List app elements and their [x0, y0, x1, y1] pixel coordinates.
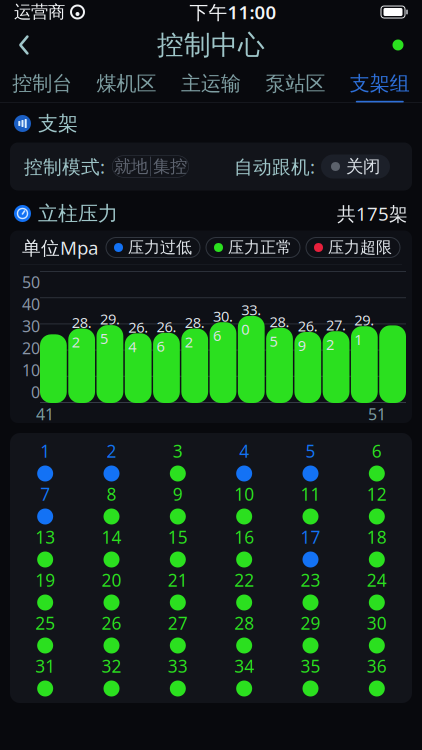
staticText: 30.6 [213, 306, 233, 345]
staticText: 50 [22, 271, 40, 293]
staticText: 煤机区 [97, 71, 157, 96]
button[interactable]: 15 [145, 525, 211, 568]
staticText: 关闭 [346, 156, 380, 177]
staticText: 集控 [153, 156, 187, 177]
button[interactable]: 5 [277, 439, 344, 482]
staticText: 34 [234, 654, 254, 677]
button[interactable]: 13 [12, 525, 78, 568]
staticText: 28 [234, 611, 254, 634]
button[interactable]: 2 [78, 439, 145, 482]
staticText: 29 [300, 611, 320, 634]
button[interactable]: 32 [78, 654, 145, 697]
staticText: 压力过低 [128, 238, 192, 257]
button[interactable]: 31 [12, 654, 78, 697]
staticText: 11 [300, 482, 320, 505]
staticText: 33.0 [241, 300, 261, 339]
button[interactable]: 24 [344, 568, 410, 611]
staticText: 13 [35, 525, 55, 548]
button[interactable]: 29 [277, 611, 344, 654]
staticText: 28.5 [269, 312, 289, 351]
staticText: 26.6 [156, 317, 176, 356]
staticText: 15 [168, 525, 188, 548]
staticText: 17 [300, 525, 320, 548]
button[interactable]: 20 [78, 568, 145, 611]
button[interactable]: 1 [12, 439, 78, 482]
button[interactable]: 25 [12, 611, 78, 654]
staticText: 立柱压力 [38, 201, 118, 226]
button[interactable]: 10 [211, 482, 277, 525]
staticText: 20 [22, 337, 40, 359]
staticText: 控制中心 [157, 29, 265, 61]
button[interactable]: 连接状态 [376, 25, 420, 65]
staticText: 泵站区 [265, 71, 325, 96]
staticText: 24 [367, 568, 387, 591]
button[interactable]: 11 [277, 482, 344, 525]
button[interactable]: 33 [145, 654, 211, 697]
staticText: 1 [40, 439, 50, 462]
staticText: 26.4 [128, 317, 148, 356]
button[interactable]: 泵站区 [253, 63, 338, 105]
button[interactable]: 16 [211, 525, 277, 568]
staticText: 4 [239, 439, 249, 462]
button[interactable]: 4 [211, 439, 277, 482]
button[interactable]: 27 [145, 611, 211, 654]
staticText: 29.1 [354, 310, 374, 349]
staticText: 30 [367, 611, 387, 634]
staticText: 就地 [114, 156, 148, 177]
staticText: 2 [106, 439, 116, 462]
staticText: 6 [372, 439, 382, 462]
staticText: 32 [101, 654, 121, 677]
staticText: 主运输 [181, 71, 241, 96]
staticText: 26 [101, 611, 121, 634]
staticText: 18 [367, 525, 387, 548]
button[interactable]: 集控 [151, 155, 189, 177]
button[interactable]: 21 [145, 568, 211, 611]
staticText: 33 [168, 654, 188, 677]
button[interactable]: 6 [344, 439, 410, 482]
button[interactable]: 26 [78, 611, 145, 654]
button[interactable]: 控制台 [0, 63, 84, 105]
staticText: 28.2 [185, 313, 205, 352]
button[interactable]: 9 [145, 482, 211, 525]
button[interactable]: 返回 [2, 25, 46, 65]
staticText: 35 [300, 654, 320, 677]
button[interactable]: 12 [344, 482, 410, 525]
staticText: 28.2 [72, 313, 92, 352]
staticText: 30 [22, 315, 40, 337]
button[interactable]: 支架组 [338, 63, 422, 105]
button[interactable]: 7 [12, 482, 78, 525]
button[interactable]: 36 [344, 654, 410, 697]
button[interactable]: 关闭 [321, 154, 390, 178]
button[interactable]: 28 [211, 611, 277, 654]
button[interactable]: 3 [145, 439, 211, 482]
staticText: 19 [35, 568, 55, 591]
staticText: 下午11:00 [189, 0, 276, 24]
staticText: 21 [168, 568, 188, 591]
button[interactable]: 35 [277, 654, 344, 697]
button[interactable]: 19 [12, 568, 78, 611]
staticText: 12 [367, 482, 387, 505]
button[interactable]: 17 [277, 525, 344, 568]
staticText: 10 [234, 482, 254, 505]
button[interactable]: 就地 [112, 155, 150, 177]
staticText: 单位Mpa [22, 235, 98, 260]
button[interactable]: 30 [344, 611, 410, 654]
button[interactable]: 22 [211, 568, 277, 611]
button[interactable]: 煤机区 [84, 63, 169, 105]
staticText: 36 [367, 654, 387, 677]
button[interactable]: 主运输 [169, 63, 253, 105]
staticText: 23 [300, 568, 320, 591]
staticText: 41 [36, 403, 54, 425]
button[interactable]: 14 [78, 525, 145, 568]
staticText: 压力正常 [228, 238, 292, 257]
button[interactable]: 8 [78, 482, 145, 525]
staticText: 16 [234, 525, 254, 548]
staticText: 14 [101, 525, 121, 548]
button[interactable]: 18 [344, 525, 410, 568]
staticText: 26.9 [298, 316, 318, 355]
staticText: 22 [234, 568, 254, 591]
button[interactable]: 34 [211, 654, 277, 697]
staticText: 9 [173, 482, 183, 505]
button[interactable]: 23 [277, 568, 344, 611]
staticText: 支架 [38, 111, 78, 136]
